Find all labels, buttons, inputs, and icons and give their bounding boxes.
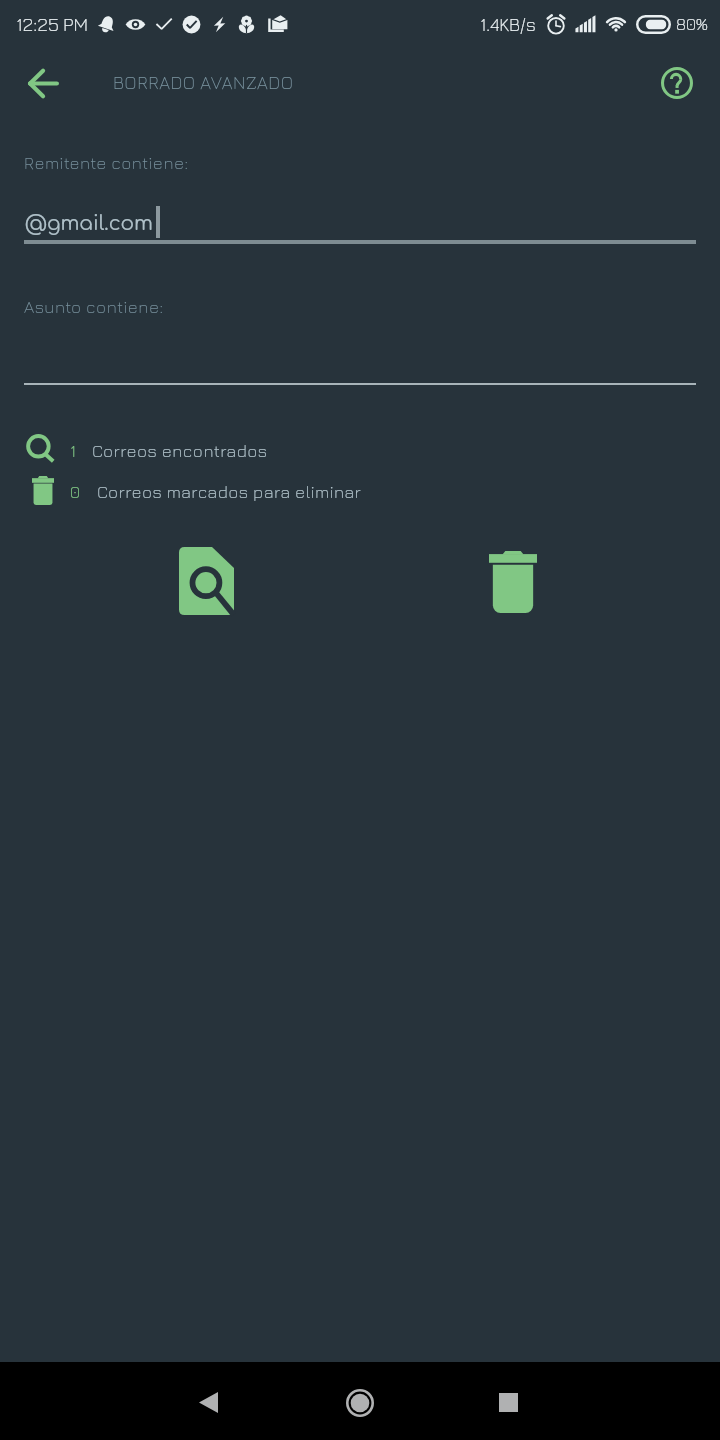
staticText: @gmail.com — [25, 212, 154, 234]
staticText: 0 — [70, 482, 80, 502]
button[interactable]: Home — [320, 1362, 400, 1440]
button[interactable]: 1 — [24, 433, 720, 467]
button[interactable]: Buscar correos — [156, 531, 256, 631]
button[interactable]: Ayuda — [653, 59, 701, 107]
staticText: 80% — [676, 14, 709, 34]
button[interactable]: Back — [170, 1362, 248, 1440]
staticText: BORRADO AVANZADO — [113, 72, 294, 93]
staticText: Correos marcados para eliminar — [97, 482, 362, 502]
staticText: Correos encontrados — [92, 441, 268, 461]
button[interactable]: 0 — [24, 474, 720, 508]
staticText: 12:25 PM — [16, 13, 88, 35]
staticText: 1.4KB/s — [480, 14, 536, 35]
staticText: Asunto contiene: — [24, 297, 164, 317]
button[interactable]: Eliminar correos — [463, 532, 563, 632]
button[interactable]: Atrás — [17, 57, 69, 109]
staticText: Remitente contiene: — [24, 153, 189, 173]
staticText: 1 — [70, 441, 76, 461]
button[interactable]: Recents — [468, 1362, 548, 1440]
